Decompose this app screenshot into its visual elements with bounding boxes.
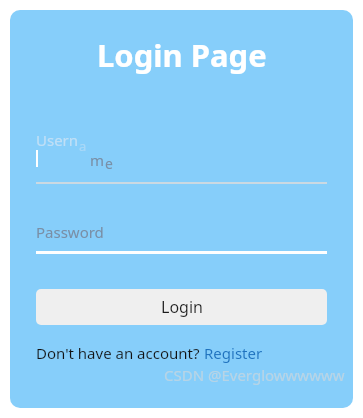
staticText: a [79, 137, 87, 155]
staticText: CSDN @Everglowwwwww [164, 365, 345, 385]
staticText: Login [161, 296, 203, 318]
staticText: Usern [36, 130, 79, 150]
button[interactable]: Register [204, 343, 263, 363]
staticText: m [90, 150, 105, 170]
button[interactable]: Password [36, 206, 327, 254]
staticText: e [105, 154, 113, 173]
staticText: Don't have an account? [36, 343, 204, 363]
staticText: Password [36, 222, 104, 242]
staticText: Register [204, 343, 263, 363]
button[interactable]: Login [36, 289, 327, 325]
staticText: Login Page [97, 34, 267, 76]
button[interactable]: Usern [36, 124, 327, 184]
